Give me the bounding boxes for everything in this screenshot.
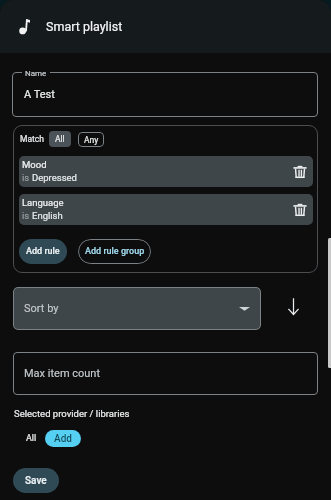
staticText: A Test bbox=[24, 88, 55, 101]
staticText: All bbox=[26, 433, 37, 444]
button[interactable]: Sort by bbox=[13, 287, 261, 330]
button[interactable]: All bbox=[49, 131, 71, 147]
staticText: Language bbox=[22, 197, 64, 208]
staticText: Add bbox=[54, 433, 72, 445]
button[interactable]: Delete rule bbox=[288, 198, 312, 222]
staticText: Selected provider / libraries bbox=[14, 408, 130, 419]
staticText: Sort by bbox=[24, 302, 59, 315]
staticText: Save bbox=[25, 475, 47, 487]
button[interactable]: Add rule group bbox=[78, 239, 151, 264]
staticText: English bbox=[32, 210, 63, 221]
staticText: Max item count bbox=[24, 367, 101, 380]
staticText: is bbox=[22, 210, 32, 221]
button[interactable]: Any bbox=[78, 132, 104, 147]
button[interactable]: Max item count bbox=[13, 352, 318, 395]
staticText: Smart playlist bbox=[46, 19, 123, 34]
button[interactable]: A Test bbox=[12, 72, 318, 117]
button[interactable]: Save bbox=[13, 468, 59, 493]
staticText: Depressed bbox=[32, 172, 77, 183]
staticText: Add rule group bbox=[85, 246, 145, 257]
button[interactable]: Mood bbox=[19, 156, 313, 187]
button[interactable]: Add rule bbox=[19, 239, 67, 264]
button[interactable]: Add bbox=[45, 430, 81, 447]
staticText: is bbox=[22, 172, 32, 183]
staticText: All bbox=[55, 134, 65, 144]
button[interactable]: Language bbox=[19, 194, 313, 225]
staticText: Mood bbox=[22, 159, 47, 170]
button[interactable]: Sort descending bbox=[279, 292, 307, 320]
staticText: Name bbox=[25, 69, 47, 78]
button[interactable]: Delete rule bbox=[288, 160, 312, 184]
staticText: Add rule bbox=[26, 246, 60, 257]
staticText: Any bbox=[84, 135, 99, 145]
staticText: Match bbox=[20, 134, 44, 144]
